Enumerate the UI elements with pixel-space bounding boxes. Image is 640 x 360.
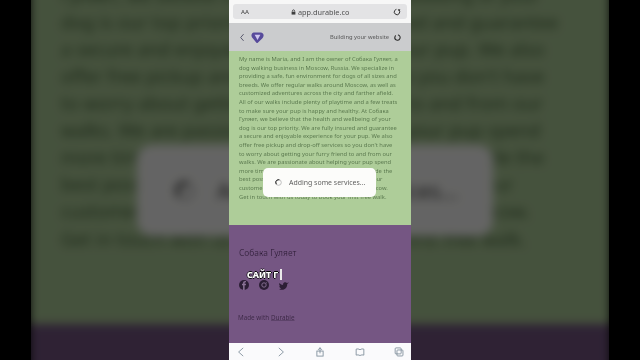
staticText: customized adventures across the city an… [239, 89, 394, 97]
staticText: Гуляет, we believe that the health and w… [61, 0, 540, 7]
button[interactable]: Facebook [239, 280, 249, 290]
button[interactable]: Adding some services... [137, 145, 493, 236]
staticText: more time outdoors, and we always strive… [61, 144, 545, 169]
staticText: Get in touch with us today to book your … [61, 226, 526, 251]
staticText: dog is our top priority. We are fully in… [239, 124, 397, 132]
staticText: Adding some services... [289, 178, 366, 187]
staticText: Made with [238, 313, 271, 322]
staticText: to make sure your pup is happy and healt… [239, 107, 389, 115]
staticText: Building your website [330, 33, 390, 41]
staticText: customers and their much-loved dogs here… [239, 184, 388, 192]
button[interactable]: Share [314, 346, 326, 358]
staticText: САЙТ Г [247, 269, 279, 281]
staticText: САЙТ Г [247, 268, 279, 280]
button[interactable]: Twitter [279, 280, 289, 290]
staticText: САЙТ Г [247, 267, 279, 279]
staticText: Adding some services... [217, 176, 459, 206]
staticText: to worry about getting your furry friend… [239, 150, 392, 158]
button[interactable]: Back [235, 346, 247, 358]
staticText: walks. We are passionate about helping y… [61, 117, 541, 142]
staticText: more time outdoors, and we always strive… [239, 167, 393, 175]
staticText: app.durable.co [298, 7, 350, 17]
button[interactable]: Back [239, 33, 245, 42]
staticText: My name is Maria, and I am the owner of … [239, 55, 398, 63]
button[interactable]: Durable [271, 313, 295, 322]
staticText: best possible dog walking experience for… [61, 171, 514, 196]
staticText: walks. We are passionate about helping y… [239, 158, 392, 166]
staticText: All of our walks include plenty of playt… [239, 98, 398, 106]
staticText: offer free pickup and drop-off services … [61, 63, 545, 88]
staticText: breeds. We offer regular walks around Mo… [239, 81, 396, 89]
button[interactable]: Forward [275, 346, 287, 358]
button[interactable]: AA [233, 4, 407, 19]
staticText: a secure and enjoyable experience for yo… [239, 132, 393, 140]
button[interactable]: Adding some services... [263, 168, 376, 197]
button[interactable]: Instagram [259, 280, 269, 290]
staticText: САЙТ Г [248, 268, 280, 280]
staticText: to worry about getting your furry friend… [61, 90, 543, 115]
staticText: best possible dog walking experience for… [239, 175, 383, 183]
staticText: customers and their much-loved dogs here… [61, 198, 530, 223]
staticText: AA [241, 8, 249, 16]
staticText: providing a safe, fun environment for do… [239, 72, 397, 80]
staticText: Get in touch with us today to book your … [239, 193, 387, 201]
staticText: САЙТ Г [246, 268, 278, 280]
button[interactable]: Reload [393, 8, 401, 16]
staticText: Гуляет, we believe that the health and w… [239, 115, 391, 123]
staticText: offer free pickup and drop-off services … [239, 141, 393, 149]
staticText: a secure and enjoyable experience for yo… [61, 36, 545, 61]
button[interactable]: Bookmarks [354, 346, 366, 358]
staticText: dog is our top priority. We are fully in… [61, 9, 559, 34]
button[interactable]: Tabs [393, 346, 405, 358]
staticText: Собака Гуляет [239, 247, 297, 258]
staticText: dog walking business in Moscow, Russia. … [239, 64, 395, 72]
